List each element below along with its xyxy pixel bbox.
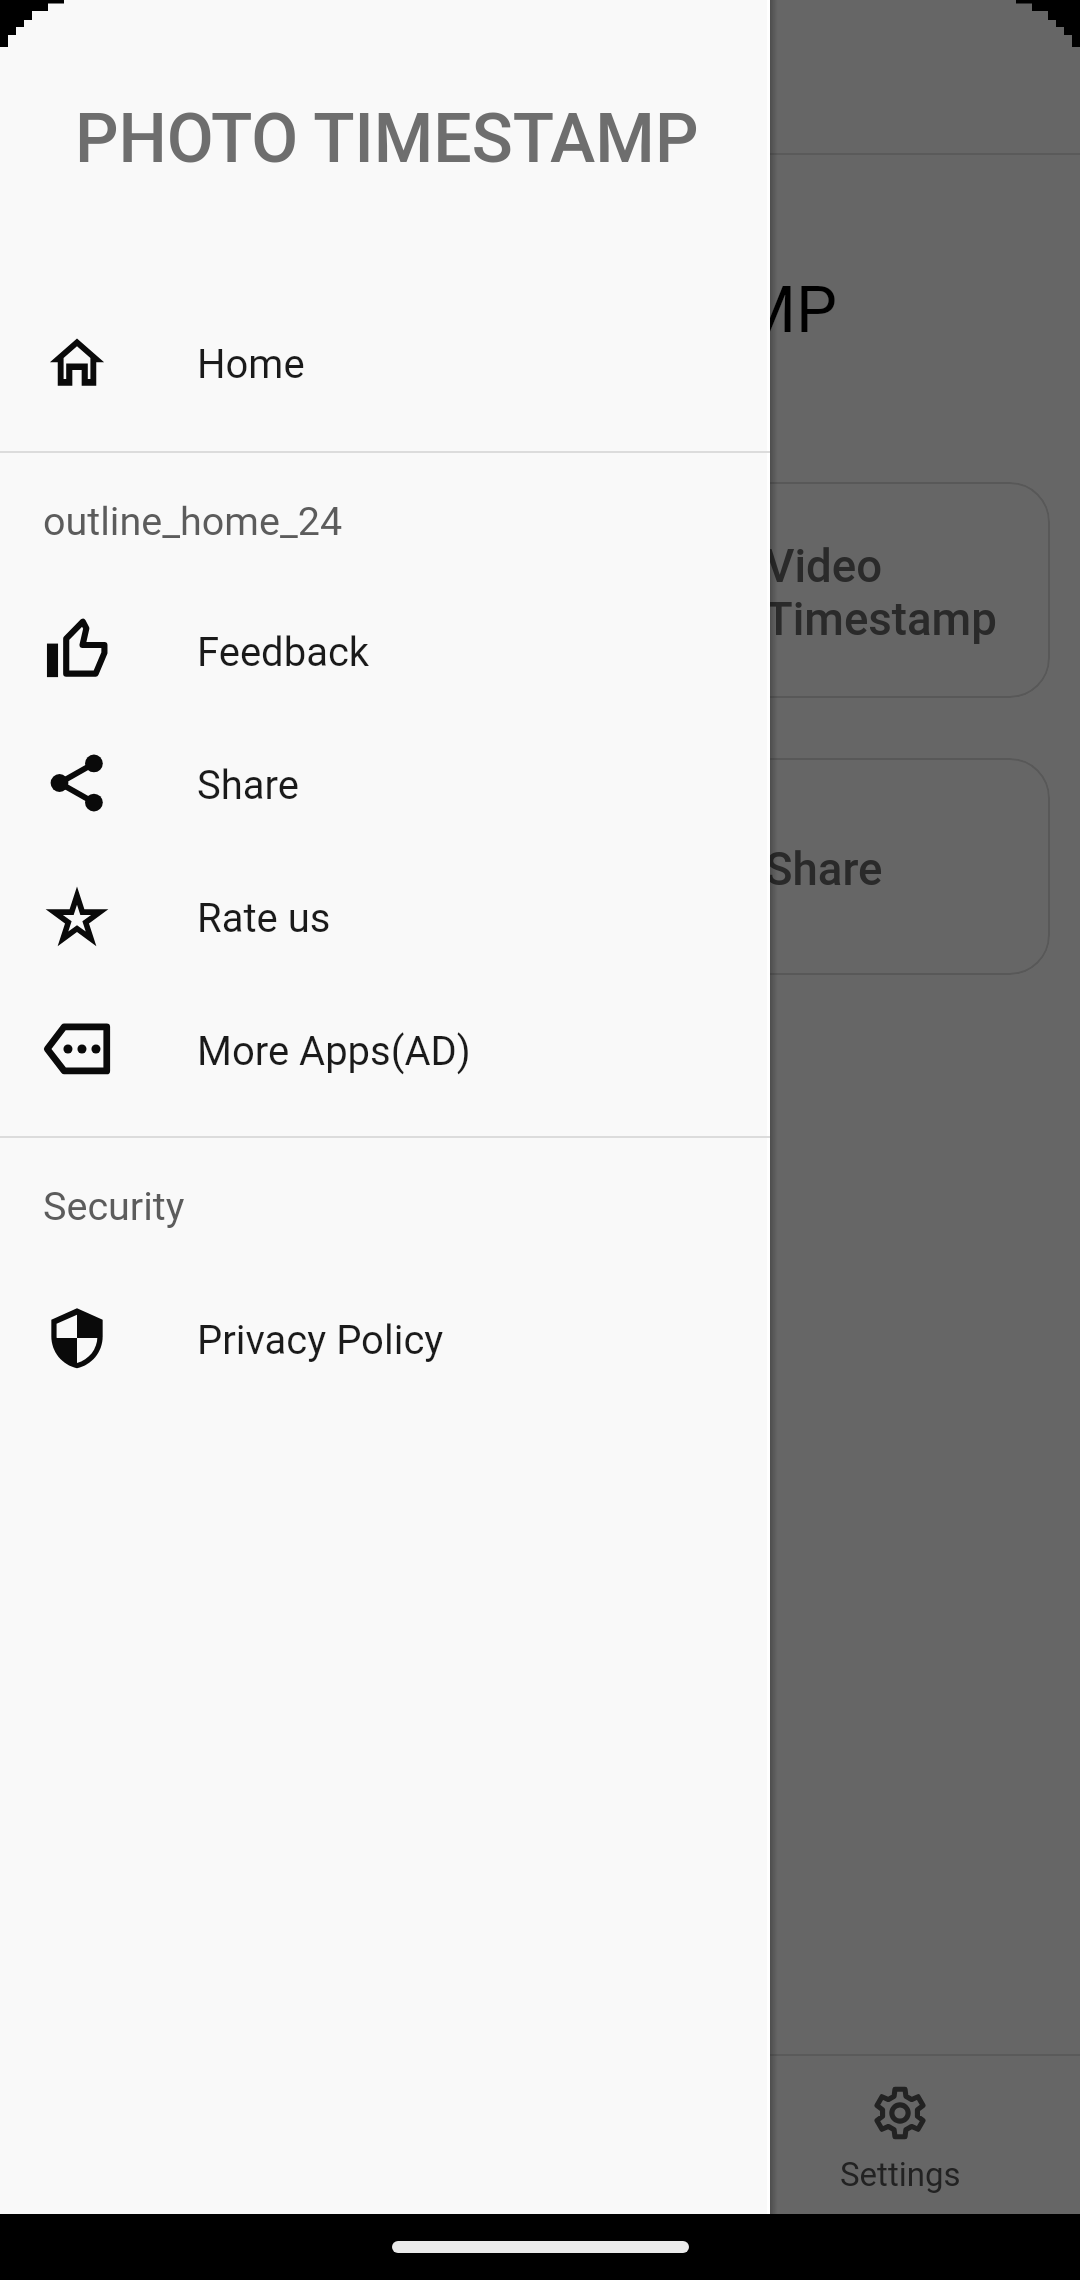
staticText: More Apps(AD): [197, 1028, 471, 1075]
button[interactable]: Share: [30, 758, 1050, 975]
staticText: Settings: [840, 2155, 961, 2194]
staticText: Privacy Policy: [197, 1317, 444, 1364]
staticText: Rate us: [197, 895, 331, 942]
staticText: Feedback: [197, 629, 370, 676]
button[interactable]: Rate us: [0, 849, 770, 982]
button[interactable]: Video Timestamp: [30, 482, 1050, 698]
button[interactable]: Feedback: [0, 583, 770, 716]
staticText: Home: [197, 341, 305, 388]
staticText: Share: [765, 843, 883, 896]
staticText: Video Timestamp: [765, 540, 997, 646]
staticText: Security: [43, 1183, 185, 1229]
button[interactable]: Privacy Policy: [0, 1271, 770, 1404]
staticText: PHOTO TIMESTAMP: [0, 272, 1080, 348]
button[interactable]: Home: [0, 295, 770, 428]
staticText: PHOTO TIMESTAMP: [75, 99, 699, 179]
button[interactable]: Settings: [720, 2056, 1080, 2194]
staticText: outline_home_24: [43, 498, 343, 544]
button[interactable]: Close navigation drawer: [0, 0, 1080, 2280]
button[interactable]: More Apps(AD): [0, 982, 770, 1115]
staticText: Share: [197, 762, 299, 809]
button[interactable]: Share: [0, 716, 770, 849]
